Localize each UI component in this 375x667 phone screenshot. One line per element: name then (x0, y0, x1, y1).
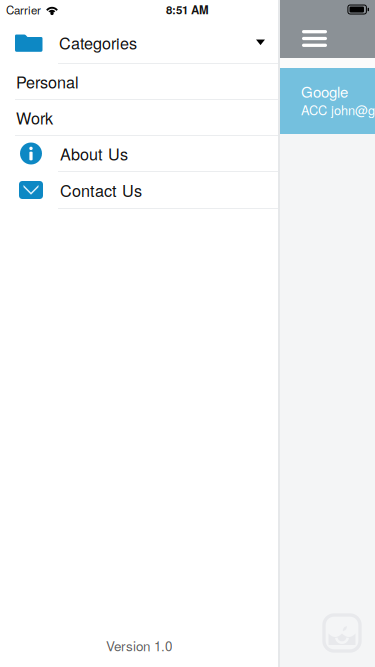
button[interactable]: Personal (0, 64, 278, 100)
staticText: Personal (16, 70, 79, 93)
staticText: Carrier (6, 1, 41, 18)
staticText: Contact Us (60, 178, 142, 202)
staticText: Work (16, 106, 53, 129)
staticText: ACC john@gmail.com (301, 101, 375, 119)
button[interactable]: About Us (0, 136, 278, 172)
button[interactable]: Menu (280, 0, 341, 58)
staticText: Google (301, 80, 348, 102)
button[interactable]: Categories (0, 22, 278, 64)
staticText: About Us (60, 142, 128, 165)
staticText: Categories (59, 31, 137, 54)
staticText: Version 1.0 (106, 636, 172, 655)
staticText: 8:51 AM (166, 1, 209, 18)
button[interactable]: Work (0, 100, 278, 136)
button[interactable]: Contact Us (0, 172, 278, 209)
